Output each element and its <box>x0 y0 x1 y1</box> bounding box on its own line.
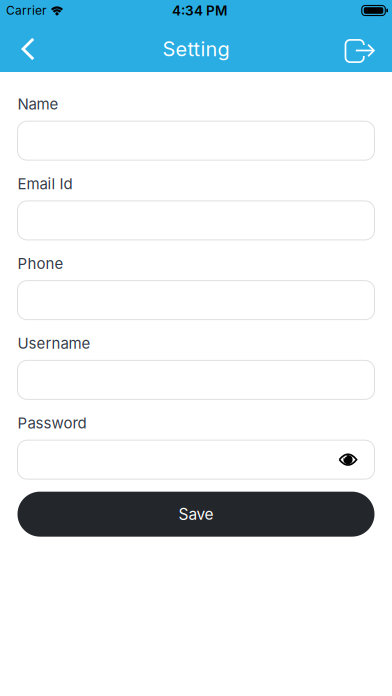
button[interactable] <box>17 440 374 479</box>
staticText: Password <box>17 414 86 432</box>
staticText: Setting <box>162 37 229 61</box>
staticText: Phone <box>17 254 63 273</box>
staticText: 4:34 PM <box>172 2 227 19</box>
button[interactable] <box>17 281 374 320</box>
button[interactable] <box>17 360 374 399</box>
button[interactable] <box>338 452 374 467</box>
staticText: Email Id <box>17 175 72 193</box>
staticText: Carrier <box>6 3 47 18</box>
button[interactable] <box>17 121 374 160</box>
button[interactable] <box>344 30 392 63</box>
staticText: Name <box>17 95 58 113</box>
button[interactable] <box>0 32 34 60</box>
button[interactable]: Save <box>17 492 374 537</box>
staticText: Username <box>17 334 90 352</box>
staticText: Save <box>178 505 213 524</box>
button[interactable] <box>17 201 374 240</box>
